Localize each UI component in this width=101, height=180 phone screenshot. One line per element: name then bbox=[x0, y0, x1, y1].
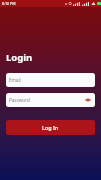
staticText: Password bbox=[9, 97, 30, 103]
staticText: Email bbox=[9, 77, 21, 83]
staticText: 8:10 PM bbox=[2, 1, 16, 6]
button[interactable]: Email bbox=[6, 73, 95, 87]
staticText: Log In bbox=[42, 124, 59, 131]
button[interactable]: Password bbox=[6, 93, 95, 107]
staticText: Login bbox=[6, 51, 33, 64]
button[interactable]: Show password bbox=[84, 96, 92, 104]
button[interactable]: Log In bbox=[6, 120, 95, 135]
